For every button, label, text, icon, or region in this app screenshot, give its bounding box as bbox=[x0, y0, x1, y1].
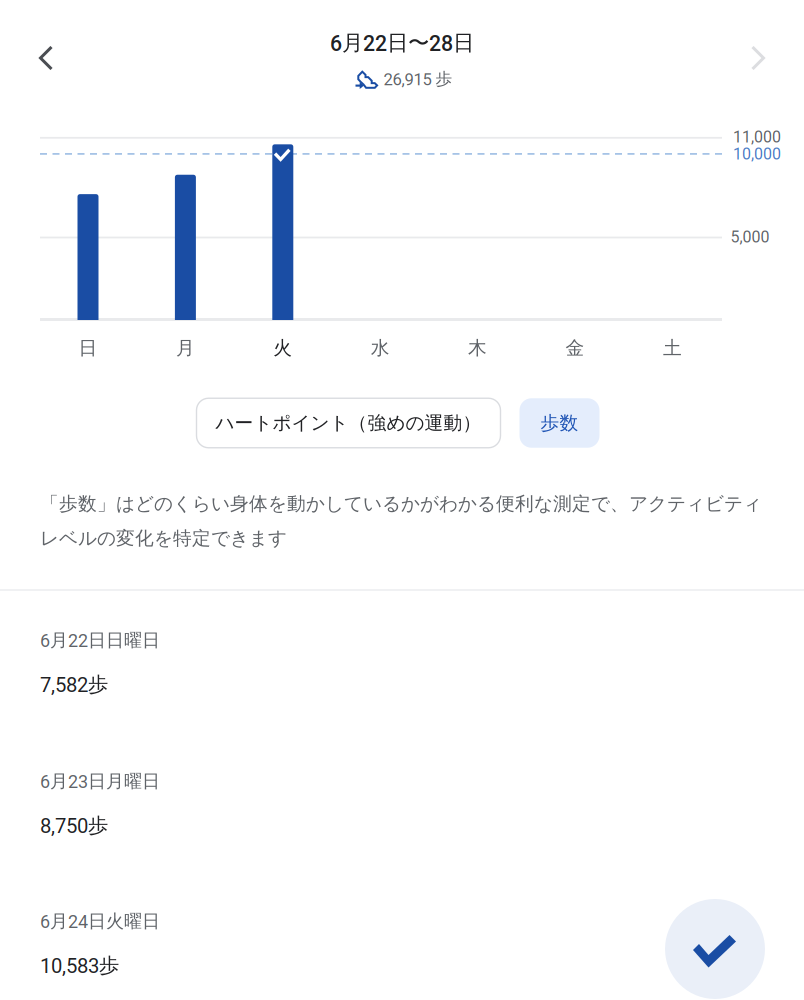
staticText: 5,000 bbox=[730, 228, 769, 246]
button[interactable]: 歩数 bbox=[519, 398, 599, 448]
staticText: 日 bbox=[78, 336, 97, 360]
staticText: 「歩数」はどのくらい身体を動かしているかがわかる便利な測定で、アクティビティレベ… bbox=[40, 492, 762, 550]
staticText: 木 bbox=[468, 336, 487, 360]
staticText: 歩数 bbox=[540, 411, 578, 435]
staticText: 6月22日日曜日 bbox=[40, 629, 160, 652]
staticText: 土 bbox=[663, 336, 682, 360]
button[interactable]: 6月24日火曜日 bbox=[0, 888, 804, 1000]
staticText: 6月23日月曜日 bbox=[40, 770, 160, 793]
staticText: 8,750歩 bbox=[40, 813, 108, 838]
staticText: 10,583歩 bbox=[40, 953, 119, 978]
button[interactable]: 次の週 bbox=[733, 27, 782, 89]
staticText: 7,582歩 bbox=[40, 672, 108, 697]
staticText: ハートポイント（強めの運動） bbox=[215, 411, 481, 435]
staticText: 火 bbox=[273, 336, 292, 360]
staticText: 11,000 bbox=[733, 128, 781, 146]
button[interactable]: 完了 bbox=[665, 899, 765, 999]
staticText: 6月22日〜28日 bbox=[330, 30, 474, 56]
button[interactable]: 6月22日日曜日 bbox=[0, 607, 804, 747]
button[interactable]: 6月23日月曜日 bbox=[0, 748, 804, 888]
button[interactable]: 前の週 bbox=[21, 27, 70, 89]
staticText: 水 bbox=[371, 336, 390, 360]
staticText: 26,915 歩 bbox=[383, 68, 452, 89]
staticText: 10,000 bbox=[733, 145, 781, 163]
staticText: 6月24日火曜日 bbox=[40, 910, 160, 933]
button[interactable]: ハートポイント（強めの運動） bbox=[196, 398, 500, 448]
staticText: 金 bbox=[565, 336, 584, 360]
staticText: 月 bbox=[176, 336, 195, 360]
